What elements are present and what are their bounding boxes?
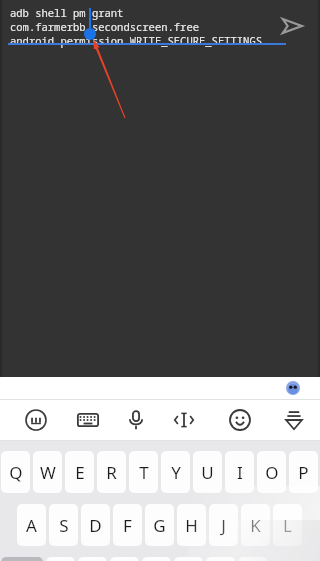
staticText: G xyxy=(153,514,166,537)
staticText: S xyxy=(59,514,69,537)
staticText: E xyxy=(75,461,85,484)
button[interactable]: U xyxy=(193,451,222,493)
button[interactable]: M xyxy=(238,557,267,561)
staticText: R xyxy=(106,461,117,484)
button[interactable]: O xyxy=(257,451,286,493)
button[interactable]: Keyboard settings xyxy=(70,402,106,438)
button[interactable]: S xyxy=(49,504,78,546)
button[interactable]: Send xyxy=(274,8,310,44)
staticText: Y xyxy=(171,461,181,484)
button[interactable]: T xyxy=(129,451,158,493)
staticText: H xyxy=(185,514,198,537)
button[interactable]: P xyxy=(289,451,318,493)
staticText: P xyxy=(298,461,309,484)
button[interactable]: Shift xyxy=(1,557,43,561)
staticText: android.permission.WRITE_SECURE_SETTINGS xyxy=(10,34,262,48)
button[interactable]: N xyxy=(206,557,235,561)
button[interactable]: K xyxy=(241,504,270,546)
button[interactable]: Z xyxy=(46,557,75,561)
staticText: Q xyxy=(9,461,23,484)
button[interactable]: Q xyxy=(1,451,30,493)
button[interactable]: Input method xyxy=(18,402,54,438)
button[interactable]: X xyxy=(78,557,107,561)
button[interactable]: Y xyxy=(161,451,190,493)
staticText: U xyxy=(201,461,214,484)
staticText: A xyxy=(26,514,37,537)
button[interactable]: A xyxy=(17,504,46,546)
button[interactable]: Voice input xyxy=(118,402,154,438)
staticText: K xyxy=(250,514,261,537)
button[interactable]: R xyxy=(97,451,126,493)
button[interactable]: I xyxy=(225,451,254,493)
staticText: J xyxy=(221,514,226,537)
button[interactable]: C xyxy=(110,557,139,561)
button[interactable]: B xyxy=(174,557,203,561)
staticText: D xyxy=(89,514,102,537)
button[interactable]: Account xyxy=(286,381,300,395)
button[interactable]: Move cursor xyxy=(166,402,202,438)
button[interactable]: Hide keyboard xyxy=(276,402,312,438)
staticText: I xyxy=(237,461,243,484)
button[interactable]: F xyxy=(113,504,142,546)
staticText: W xyxy=(40,461,56,484)
button[interactable]: V xyxy=(142,557,171,561)
button[interactable]: G xyxy=(145,504,174,546)
button[interactable]: W xyxy=(33,451,62,493)
button[interactable]: E xyxy=(65,451,94,493)
staticText: adb shell pm grant xyxy=(10,6,124,20)
staticText: L xyxy=(283,514,292,537)
staticText: F xyxy=(123,514,132,537)
button[interactable]: H xyxy=(177,504,206,546)
staticText: T xyxy=(139,461,149,484)
button[interactable]: Emoji xyxy=(222,402,258,438)
staticText: O xyxy=(265,461,279,484)
button[interactable]: J xyxy=(209,504,238,546)
button[interactable]: D xyxy=(81,504,110,546)
staticText: com.farmerbb.secondscreen.free xyxy=(10,20,199,34)
button[interactable]: L xyxy=(273,504,302,546)
